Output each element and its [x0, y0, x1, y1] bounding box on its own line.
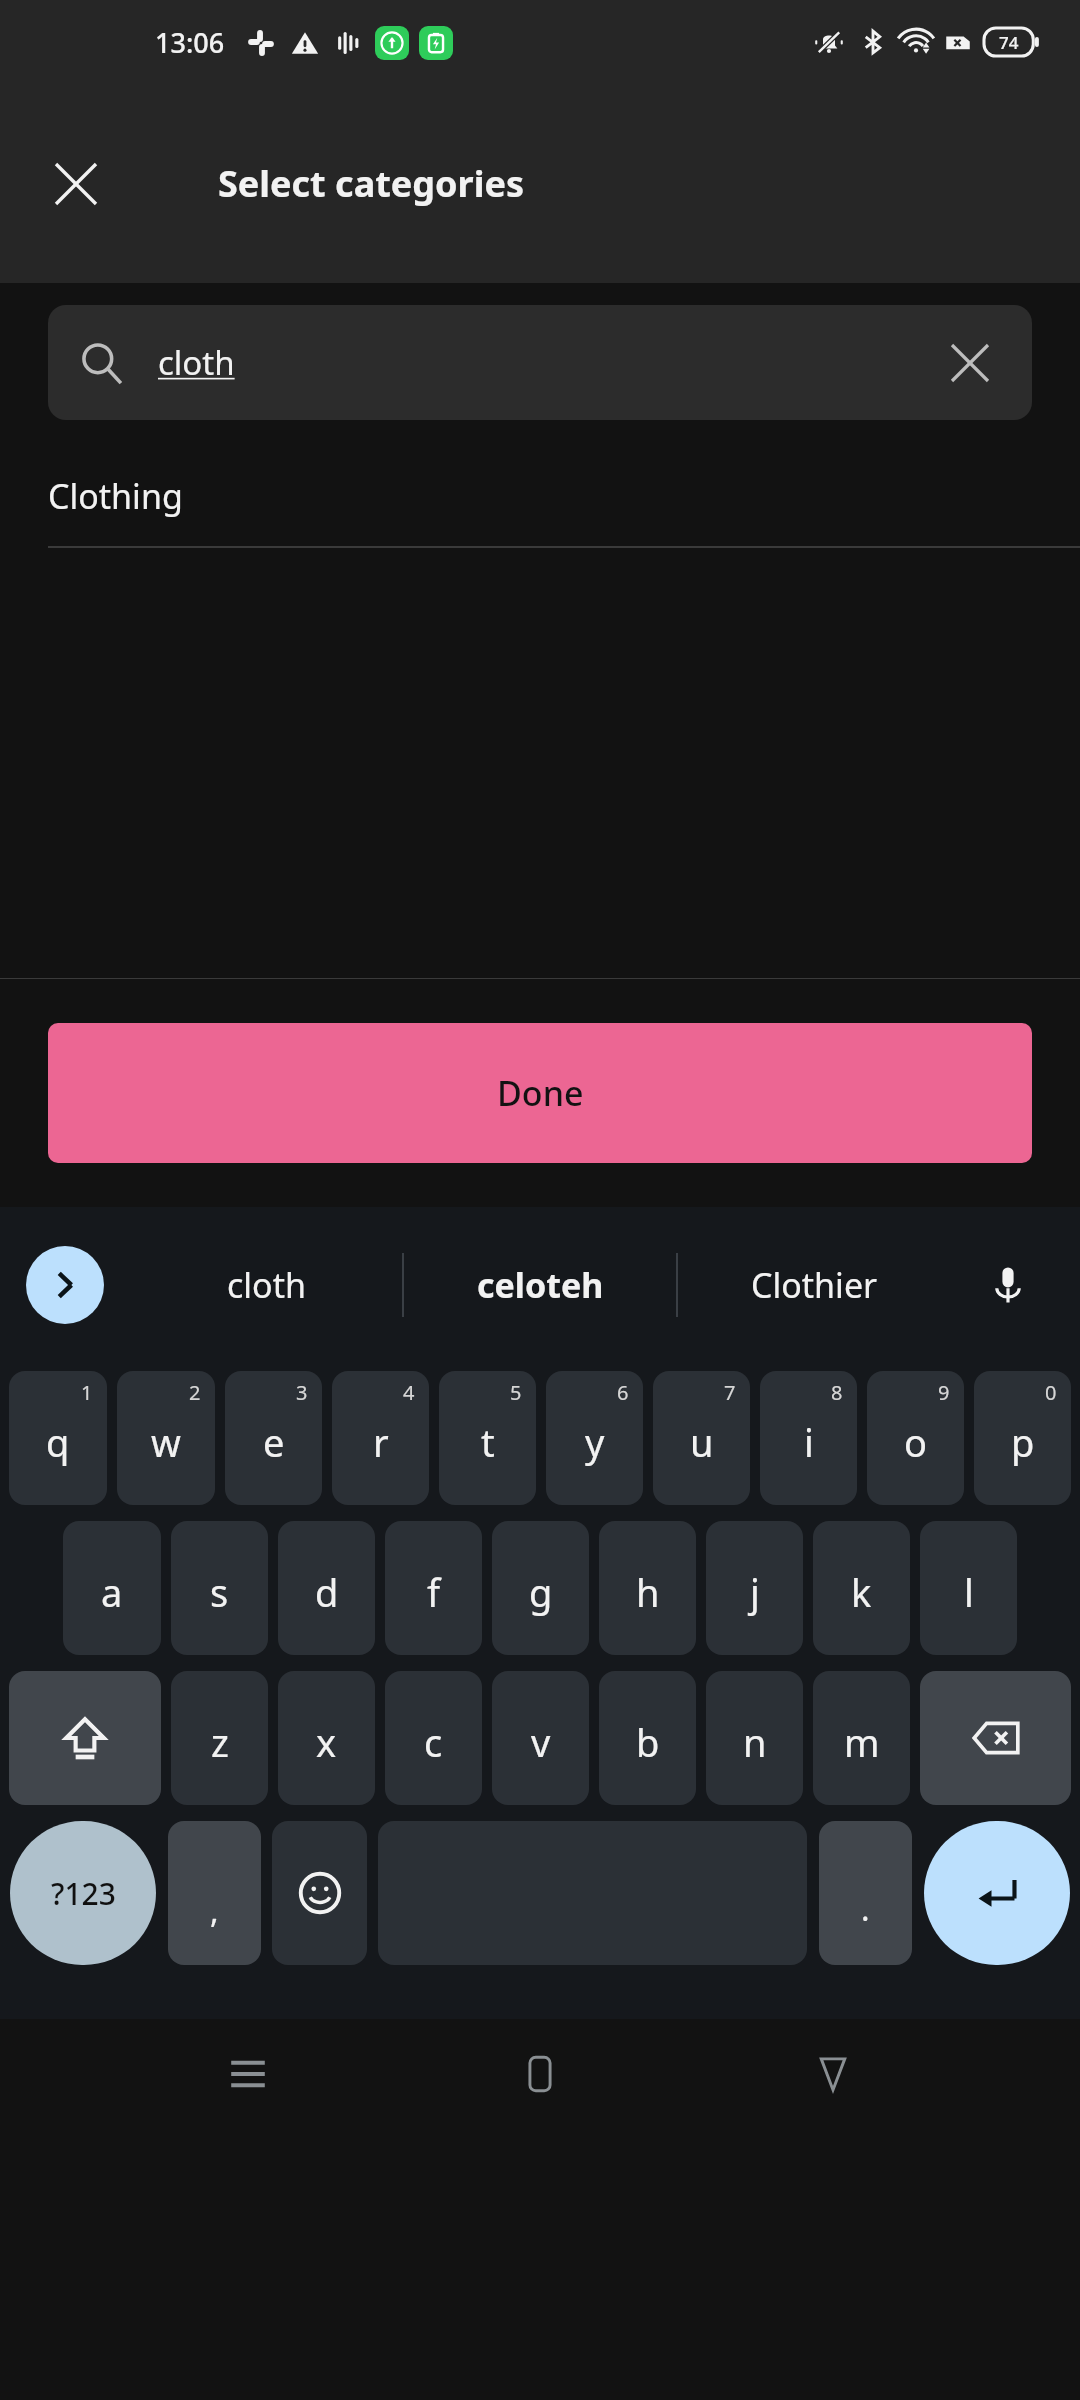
staticText: 6 [617, 1379, 629, 1406]
button[interactable]: v [492, 1671, 589, 1805]
button[interactable]: celoteh [404, 1262, 676, 1308]
button[interactable]: . [819, 1821, 912, 1965]
button[interactable]: Shift [9, 1671, 161, 1805]
button[interactable]: z [171, 1671, 268, 1805]
button[interactable]: i [760, 1371, 857, 1505]
staticText: celoteh [477, 1262, 604, 1308]
button[interactable]: t [439, 1371, 536, 1505]
button[interactable]: l [920, 1521, 1017, 1655]
staticText: l [964, 1566, 974, 1618]
staticText: q [46, 1416, 70, 1468]
staticText: c [424, 1716, 443, 1768]
button[interactable]: m [813, 1671, 910, 1805]
button[interactable]: Enter [924, 1821, 1070, 1965]
button[interactable]: x [278, 1671, 375, 1805]
staticText: b [636, 1716, 660, 1768]
staticText: 7 [724, 1379, 736, 1406]
button[interactable]: Voice input [972, 1249, 1044, 1321]
staticText: 4 [403, 1379, 415, 1406]
button[interactable]: Recents [203, 2029, 293, 2119]
button[interactable]: , [168, 1821, 261, 1965]
staticText: . [861, 1887, 870, 1931]
button[interactable]: ?123 [10, 1821, 156, 1965]
staticText: 0 [1045, 1379, 1057, 1406]
button[interactable]: e [225, 1371, 322, 1505]
staticText: 9 [938, 1379, 950, 1406]
staticText: 3 [296, 1379, 308, 1406]
button[interactable]: cloth [130, 1262, 402, 1308]
button[interactable]: g [492, 1521, 589, 1655]
button[interactable]: Home [495, 2029, 585, 2119]
button[interactable]: s [171, 1521, 268, 1655]
staticText: 13:06 [155, 24, 225, 61]
button[interactable]: Done [48, 1023, 1032, 1163]
staticText: 5 [510, 1379, 522, 1406]
staticText: i [804, 1416, 814, 1468]
staticText: cloth [227, 1262, 306, 1308]
staticText: o [904, 1416, 927, 1468]
button[interactable]: n [706, 1671, 803, 1805]
button[interactable]: Emoji [272, 1821, 367, 1965]
staticText: t [481, 1416, 495, 1468]
button[interactable]: d [278, 1521, 375, 1655]
button[interactable]: q [9, 1371, 107, 1505]
button[interactable]: o [867, 1371, 964, 1505]
staticText: 74 [999, 31, 1019, 54]
staticText: x [316, 1716, 337, 1768]
staticText: a [101, 1566, 123, 1618]
button[interactable]: y [546, 1371, 643, 1505]
staticText: p [1011, 1416, 1035, 1468]
staticText: 1 [81, 1379, 93, 1406]
staticText: j [750, 1566, 760, 1618]
button[interactable]: Clothing [0, 446, 1080, 546]
staticText: n [743, 1716, 767, 1768]
button[interactable]: a [63, 1521, 161, 1655]
button[interactable]: r [332, 1371, 429, 1505]
staticText: 2 [189, 1379, 201, 1406]
staticText: y [585, 1416, 605, 1468]
button[interactable]: Clear search [938, 331, 1002, 395]
staticText: r [373, 1416, 389, 1468]
button[interactable]: u [653, 1371, 750, 1505]
staticText: cloth [158, 340, 235, 385]
staticText: w [151, 1416, 181, 1468]
button[interactable]: Backspace [920, 1671, 1071, 1805]
button[interactable]: w [117, 1371, 215, 1505]
staticText: k [851, 1566, 872, 1618]
staticText: e [263, 1416, 285, 1468]
button[interactable]: p [974, 1371, 1071, 1505]
button[interactable]: f [385, 1521, 482, 1655]
staticText: f [427, 1566, 441, 1618]
staticText: g [529, 1566, 553, 1618]
staticText: m [844, 1716, 880, 1768]
staticText: h [636, 1566, 660, 1618]
button[interactable]: b [599, 1671, 696, 1805]
button[interactable]: cloth [48, 305, 1032, 420]
staticText: 8 [831, 1379, 843, 1406]
staticText: , [210, 1889, 219, 1933]
staticText: z [211, 1716, 229, 1768]
button[interactable]: j [706, 1521, 803, 1655]
staticText: Clothing [48, 473, 183, 519]
button[interactable]: h [599, 1521, 696, 1655]
button[interactable]: More suggestions [26, 1246, 104, 1324]
button[interactable]: Back [788, 2029, 878, 2119]
staticText: v [531, 1716, 551, 1768]
staticText: Done [497, 1070, 584, 1116]
staticText: Clothier [751, 1262, 878, 1308]
staticText: d [315, 1566, 339, 1618]
button[interactable]: k [813, 1521, 910, 1655]
staticText: u [690, 1416, 714, 1468]
button[interactable]: c [385, 1671, 482, 1805]
staticText: ?123 [51, 1873, 116, 1914]
button[interactable]: Clothier [678, 1262, 950, 1308]
staticText: s [210, 1566, 229, 1618]
staticText: Select categories [218, 159, 525, 208]
button[interactable]: Close [38, 146, 114, 222]
